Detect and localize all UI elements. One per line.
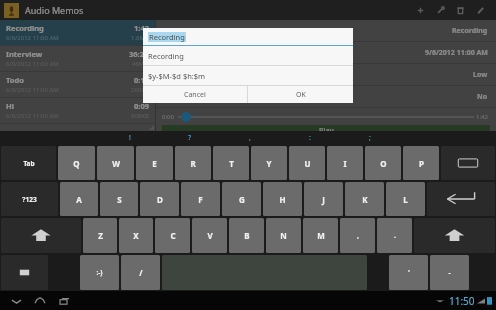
staticText: Audio Memos — [25, 4, 84, 16]
staticText: 11:50 — [449, 294, 475, 308]
button[interactable]: :-) — [80, 255, 119, 290]
button[interactable]: Backspace — [441, 146, 495, 180]
staticText: Interview — [6, 49, 43, 59]
button[interactable]: A — [60, 182, 98, 216]
button[interactable]: , — [340, 218, 375, 253]
staticText: 9/6/2012 11:00 AM — [425, 48, 488, 58]
button[interactable]: - — [430, 255, 469, 290]
button[interactable]: Cancel — [143, 86, 247, 103]
button[interactable]: ?123 — [1, 182, 58, 216]
button[interactable]: Recording — [143, 46, 353, 65]
button[interactable]: V — [192, 218, 227, 253]
button[interactable]: Shift — [1, 218, 81, 253]
staticText: 6/9/2012 11:00 AM — [6, 112, 59, 120]
staticText: T — [229, 158, 234, 169]
button[interactable]: Low — [156, 64, 496, 85]
staticText: B — [244, 230, 250, 241]
button[interactable]: U — [289, 146, 325, 180]
staticText: 260KB — [131, 86, 149, 94]
button[interactable]: I — [327, 146, 363, 180]
button[interactable]: Q — [58, 146, 95, 180]
button[interactable]: L — [386, 182, 425, 216]
staticText: D — [157, 194, 163, 205]
staticText: 0:00 — [162, 113, 174, 121]
button[interactable]: Settings — [430, 0, 450, 20]
button[interactable]: Recording — [0, 20, 155, 45]
button[interactable]: Delete — [450, 0, 470, 20]
button[interactable]: O — [365, 146, 401, 180]
button[interactable]: N — [266, 218, 301, 253]
button[interactable]: H — [263, 182, 302, 216]
staticText: Low — [473, 70, 488, 80]
button[interactable]: Hi — [0, 98, 155, 123]
button[interactable]: Recents — [56, 293, 72, 309]
staticText: 0:09 — [134, 101, 149, 111]
staticText: I — [343, 158, 347, 169]
button[interactable]: R — [175, 146, 211, 180]
button[interactable]: Add — [410, 0, 430, 20]
staticText: G — [239, 194, 245, 205]
staticText: - — [448, 268, 451, 278]
staticText: H — [279, 194, 286, 205]
staticText: K — [362, 194, 368, 205]
button[interactable]: J — [304, 182, 343, 216]
staticText: 1:42 — [134, 23, 149, 33]
button[interactable]: Edit — [470, 0, 490, 20]
button[interactable]: Shift — [414, 218, 495, 253]
staticText: Q — [73, 158, 80, 169]
staticText: Y — [266, 158, 272, 169]
button[interactable]: X — [119, 218, 153, 253]
button[interactable]: . — [377, 218, 412, 253]
button[interactable]: F — [181, 182, 220, 216]
button[interactable]: OK — [248, 86, 353, 103]
button[interactable]: / — [121, 255, 160, 290]
button[interactable]: : — [280, 131, 340, 145]
button[interactable]: ' — [389, 255, 428, 290]
button[interactable]: Z — [83, 218, 117, 253]
staticText: :-) — [96, 268, 103, 277]
staticText: 808KB — [131, 112, 149, 120]
staticText: L — [403, 194, 408, 205]
button[interactable]: Back — [8, 293, 24, 309]
button[interactable]: Home — [32, 293, 48, 309]
button[interactable]: M — [303, 218, 338, 253]
button[interactable]: Keyboard settings — [1, 255, 48, 290]
button[interactable]: ! — [100, 131, 160, 145]
button[interactable]: S — [100, 182, 138, 216]
button[interactable]: G — [222, 182, 261, 216]
button[interactable]: Recording — [156, 20, 496, 41]
staticText: Cancel — [184, 90, 206, 100]
button[interactable]: E — [136, 146, 173, 180]
button[interactable]: W — [97, 146, 134, 180]
staticText: 6/9/2012 11:00 AM — [6, 86, 59, 94]
button[interactable]: Enter — [427, 182, 495, 216]
button[interactable]: Todo — [0, 72, 155, 97]
staticText: Hi — [6, 101, 14, 111]
button[interactable]: P — [403, 146, 439, 180]
button[interactable]: , — [220, 131, 280, 145]
button[interactable]: Tab — [1, 146, 56, 180]
staticText: Tab — [23, 159, 35, 168]
button[interactable]: ? — [160, 131, 220, 145]
button[interactable]: K — [345, 182, 384, 216]
button[interactable]: C — [155, 218, 190, 253]
button[interactable]: 9/6/2012 11:00 AM — [156, 42, 496, 63]
staticText: O — [380, 158, 387, 169]
button[interactable]: Interview — [0, 46, 155, 71]
button[interactable]: No — [156, 86, 496, 107]
staticText: Play — [319, 125, 334, 131]
staticText: $y-$M-$d $h:$m — [148, 71, 206, 81]
staticText: A — [76, 194, 82, 205]
staticText: : — [309, 133, 311, 143]
staticText: S — [117, 194, 122, 205]
button[interactable]: T — [213, 146, 249, 180]
button[interactable]: Y — [251, 146, 287, 180]
button[interactable]: Play — [162, 125, 490, 131]
staticText: OK — [296, 90, 306, 100]
button[interactable]: D — [140, 182, 179, 216]
button[interactable]: B — [229, 218, 264, 253]
button[interactable]: $y-$M-$d $h:$m — [143, 66, 353, 85]
staticText: 6/9/2012 11:00 AM — [6, 60, 59, 68]
button[interactable]: ; — [340, 131, 400, 145]
